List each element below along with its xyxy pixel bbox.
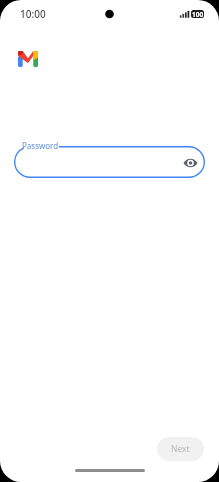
button[interactable] (14, 146, 205, 178)
staticText: 100 (192, 10, 204, 18)
staticText: Password (22, 140, 59, 151)
staticText: Next (171, 443, 190, 455)
button[interactable]: Show password (179, 152, 201, 174)
staticText: 10:00 (20, 7, 46, 21)
button[interactable]: Next (157, 437, 204, 461)
